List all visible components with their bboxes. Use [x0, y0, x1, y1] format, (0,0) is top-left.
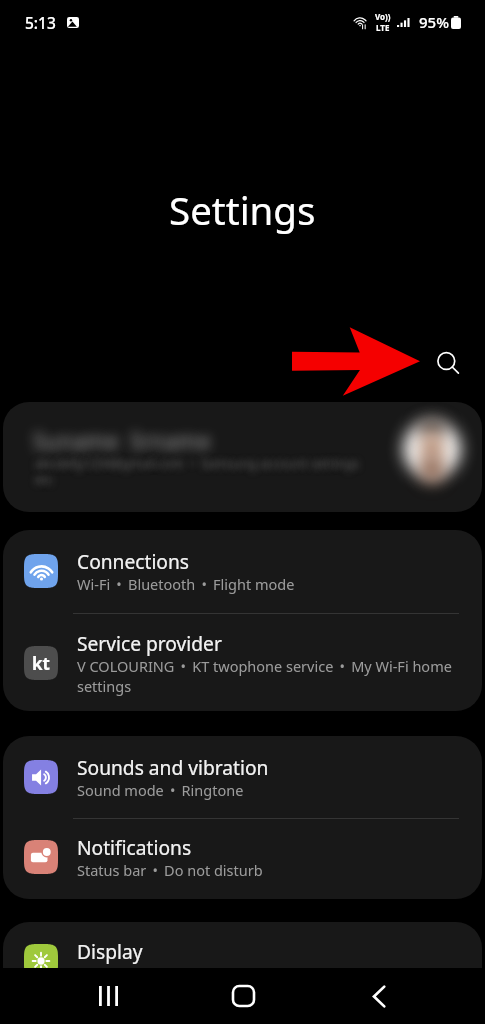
staticText: Display: [77, 938, 143, 964]
button[interactable]: Search: [424, 339, 472, 387]
staticText: Wi-Fi • Bluetooth • Flight mode: [77, 574, 295, 594]
button[interactable]: Notifications: [3, 819, 482, 899]
button[interactable]: [3, 402, 482, 512]
staticText: Connections: [77, 548, 190, 574]
button[interactable]: Home: [209, 974, 277, 1018]
staticText: Vo)): [375, 11, 391, 22]
button[interactable]: Display: [3, 922, 482, 1004]
button[interactable]: Sounds and vibration: [3, 736, 482, 818]
staticText: Notifications: [77, 834, 192, 860]
staticText: Service provider: [77, 630, 222, 656]
staticText: Settings: [169, 184, 316, 236]
staticText: LTE: [376, 22, 390, 33]
staticText: kt: [32, 652, 50, 675]
staticText: 95%: [419, 12, 449, 32]
staticText: 5:13: [25, 12, 56, 33]
staticText: Sound mode • Ringtone: [77, 780, 244, 800]
staticText: Status bar • Do not disturb: [77, 860, 263, 880]
button[interactable]: kt: [3, 614, 482, 711]
button[interactable]: Connections: [3, 530, 482, 613]
staticText: V COLOURING • KT twophone service • My W…: [77, 656, 458, 696]
button[interactable]: Recents: [74, 974, 142, 1018]
button[interactable]: Back: [345, 974, 413, 1018]
staticText: Brightness • Eye comfort shield • Naviga…: [77, 964, 413, 984]
staticText: Sounds and vibration: [77, 754, 269, 780]
